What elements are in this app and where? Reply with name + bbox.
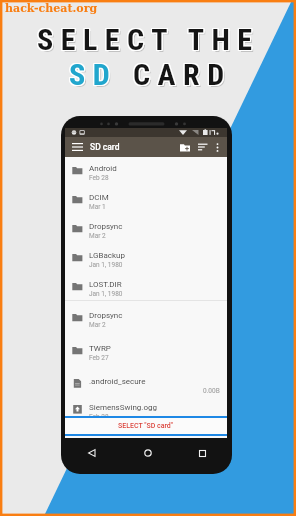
staticText: Jan 1, 1980 <box>89 261 123 269</box>
staticText: Dropsync <box>89 222 123 231</box>
staticText: SD <box>69 57 118 92</box>
staticText: CARD <box>134 56 233 91</box>
staticText: CARD <box>133 57 232 92</box>
button[interactable]: SiemensSwing.ogg <box>65 403 227 424</box>
staticText: Feb 28 <box>89 174 109 182</box>
staticText: SD <box>71 59 120 94</box>
staticText: hack-cheat.org <box>5 2 98 15</box>
button[interactable]: LGBackup <box>65 251 227 272</box>
staticText: SD <box>68 57 117 92</box>
staticText: CARD <box>133 56 232 91</box>
staticText: Feb 27 <box>89 354 109 362</box>
button[interactable]: More options <box>210 137 224 157</box>
staticText: SELECT "SD card" <box>118 422 174 430</box>
staticText: LOST.DIR <box>89 280 122 289</box>
staticText: SD <box>68 56 117 91</box>
button[interactable]: Navigation menu <box>69 137 86 157</box>
staticText: SELECT THE <box>38 22 261 57</box>
staticText: CARD <box>134 58 233 93</box>
button[interactable]: Android <box>65 164 227 185</box>
staticText: SD <box>70 57 119 92</box>
staticText: SD card <box>90 142 120 152</box>
staticText: Android <box>89 164 117 173</box>
button[interactable]: LOST.DIR <box>65 280 227 301</box>
button[interactable]: SELECT "SD card" <box>65 418 227 434</box>
staticText: SELECT THE <box>37 21 260 56</box>
staticText: SELECT THE <box>36 23 259 58</box>
staticText: SD <box>70 58 119 93</box>
button[interactable]: .android_secure <box>65 377 227 398</box>
staticText: Jan 1, 1980 <box>89 290 123 298</box>
button[interactable]: New folder <box>177 137 193 157</box>
staticText: DCIM <box>89 193 109 202</box>
staticText: Dropsync <box>89 311 123 320</box>
button[interactable]: Home <box>139 444 157 462</box>
staticText: CARD <box>135 59 234 94</box>
staticText: Mar 2 <box>89 232 106 240</box>
staticText: Mar 2 <box>89 321 106 329</box>
staticText: SELECT THE <box>36 22 259 57</box>
button[interactable]: Recent apps <box>193 444 211 462</box>
staticText: CARD <box>132 58 231 93</box>
staticText: SELECT THE <box>38 21 261 56</box>
staticText: CARD <box>134 57 233 92</box>
staticText: Feb 28 <box>89 413 109 421</box>
staticText: SELECT THE <box>38 23 261 58</box>
staticText: SELECT THE <box>39 24 262 59</box>
staticText: SELECT THE <box>36 21 259 56</box>
staticText: .android_secure <box>89 377 146 386</box>
staticText: TWRP <box>89 344 111 353</box>
button[interactable]: Dropsync <box>65 222 227 243</box>
staticText: 0.00B <box>203 387 220 395</box>
button[interactable]: Back <box>82 444 100 462</box>
button[interactable]: DCIM <box>65 193 227 214</box>
button[interactable]: TWRP <box>65 344 227 365</box>
staticText: CARD <box>132 56 231 91</box>
button[interactable]: Dropsync <box>65 311 227 332</box>
staticText: SD <box>69 58 118 93</box>
button[interactable]: Sort <box>195 137 211 157</box>
staticText: CARD <box>133 58 232 93</box>
staticText: SELECT THE <box>37 22 260 57</box>
staticText: SD <box>70 56 119 91</box>
staticText: SiemensSwing.ogg <box>89 403 158 412</box>
staticText: CARD <box>132 57 231 92</box>
staticText: SELECT THE <box>37 23 260 58</box>
staticText: SD <box>68 58 117 93</box>
staticText: Mar 1 <box>89 203 106 211</box>
staticText: SD <box>69 56 118 91</box>
staticText: LGBackup <box>89 251 125 260</box>
